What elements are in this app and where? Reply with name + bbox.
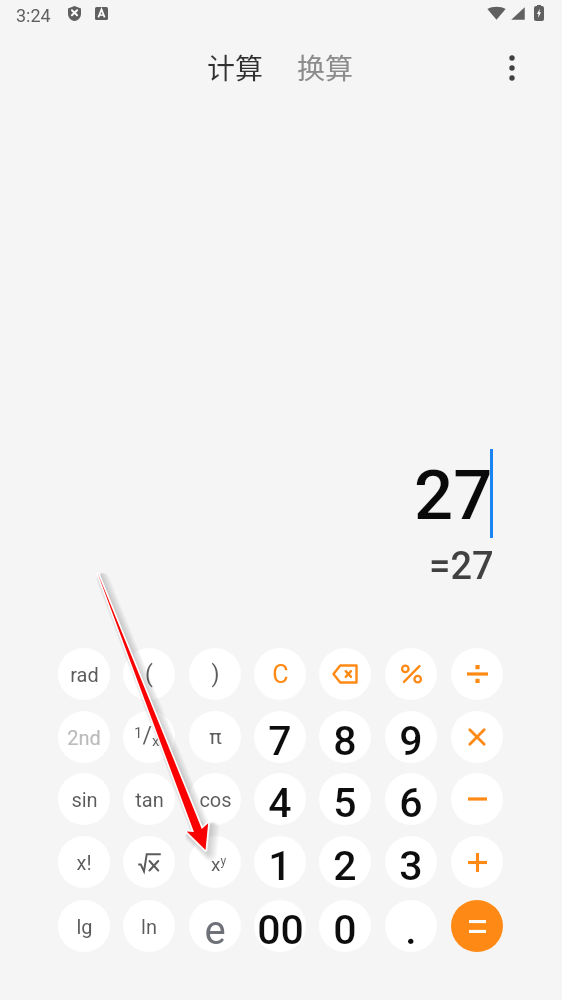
staticText: lg <box>76 915 93 938</box>
button[interactable]: 9 <box>385 711 437 763</box>
staticText: 2 <box>333 842 357 888</box>
button[interactable]: 5 <box>319 773 371 825</box>
button[interactable]: rad <box>58 648 110 700</box>
button[interactable]: 2 <box>319 836 371 888</box>
staticText: 1 <box>268 842 292 888</box>
button[interactable]: Backspace <box>319 648 371 700</box>
button[interactable]: Divide <box>451 648 503 700</box>
button[interactable]: π <box>189 711 241 763</box>
button[interactable]: Reciprocal <box>123 711 175 763</box>
staticText: 27 <box>414 455 493 536</box>
staticText: 8 <box>333 717 357 763</box>
staticText: =27 <box>429 544 494 589</box>
staticText: 1/x <box>134 722 160 750</box>
button[interactable]: 计算 <box>197 39 274 96</box>
staticText: 9 <box>399 717 423 763</box>
staticText: . <box>405 906 417 952</box>
button[interactable]: Plus <box>451 836 503 888</box>
staticText: 00 <box>257 906 304 952</box>
staticText: π <box>209 725 222 750</box>
staticText: 2nd <box>67 726 101 749</box>
button[interactable]: Minus <box>451 773 503 825</box>
button[interactable]: lg <box>58 900 110 952</box>
staticText: 换算 <box>297 47 354 88</box>
button[interactable]: Power <box>189 836 241 888</box>
staticText: 3 <box>399 842 423 888</box>
staticText: C <box>272 660 289 689</box>
staticText: ln <box>141 915 157 938</box>
button[interactable]: 8 <box>319 711 371 763</box>
button[interactable]: x! <box>58 836 110 888</box>
button[interactable]: cos <box>189 773 241 825</box>
staticText: ( <box>145 661 153 688</box>
staticText: x! <box>76 851 92 874</box>
button[interactable]: C <box>254 648 306 700</box>
button[interactable]: 6 <box>385 773 437 825</box>
button[interactable]: Equals <box>451 900 503 952</box>
button[interactable]: 换算 <box>287 39 364 96</box>
staticText: 7 <box>268 717 292 763</box>
button[interactable]: e <box>189 900 241 952</box>
staticText: ) <box>211 661 220 688</box>
button[interactable]: ln <box>123 900 175 952</box>
button[interactable]: 1 <box>254 836 306 888</box>
button[interactable]: sin <box>58 773 110 825</box>
button[interactable]: Percent <box>385 648 437 700</box>
button[interactable]: Multiply <box>451 711 503 763</box>
button[interactable]: . <box>385 900 437 952</box>
staticText: rad <box>70 663 99 686</box>
staticText: 3:24 <box>16 5 51 26</box>
staticText: 0 <box>333 906 357 952</box>
staticText: sin <box>71 788 98 811</box>
button[interactable]: 3 <box>385 836 437 888</box>
staticText: xy <box>211 853 227 875</box>
button[interactable]: 00 <box>254 900 306 952</box>
staticText: 计算 <box>207 47 264 88</box>
button[interactable]: ( <box>123 648 175 700</box>
button[interactable]: 2nd <box>58 711 110 763</box>
button[interactable]: More options <box>488 44 536 92</box>
button[interactable]: 7 <box>254 711 306 763</box>
staticText: e <box>204 907 226 952</box>
staticText: cos <box>199 788 232 811</box>
staticText: 6 <box>399 779 423 825</box>
button[interactable]: Square root <box>123 836 175 888</box>
staticText: 4 <box>268 779 292 825</box>
button[interactable]: tan <box>123 773 175 825</box>
button[interactable]: 0 <box>319 900 371 952</box>
staticText: 5 <box>333 779 357 825</box>
button[interactable]: 4 <box>254 773 306 825</box>
staticText: tan <box>135 788 164 811</box>
button[interactable]: ) <box>189 648 241 700</box>
